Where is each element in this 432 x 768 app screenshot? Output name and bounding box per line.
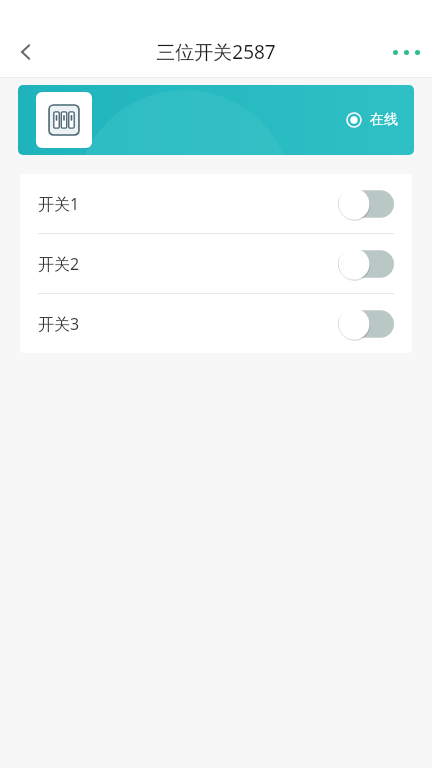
button[interactable]: Back (0, 26, 52, 78)
button[interactable]: 开关1 (20, 174, 412, 233)
staticText: 开关3 (38, 313, 80, 335)
button[interactable]: 在线 (18, 85, 414, 155)
button[interactable]: Toggle switch (338, 188, 394, 220)
button[interactable]: 开关3 (20, 294, 412, 353)
staticText: 开关2 (38, 253, 80, 275)
button[interactable]: More options (380, 26, 432, 78)
staticText: 三位开关2587 (156, 39, 276, 65)
button[interactable]: 开关2 (20, 234, 412, 293)
button[interactable]: Toggle switch (338, 308, 394, 340)
staticText: 在线 (370, 111, 398, 129)
button[interactable]: Toggle switch (338, 248, 394, 280)
staticText: 开关1 (38, 193, 80, 215)
